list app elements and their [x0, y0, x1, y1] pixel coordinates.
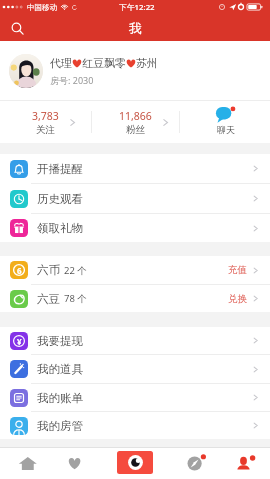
staticText: 78 个 — [64, 292, 87, 305]
staticText: 我 — [129, 20, 142, 36]
staticText: 红豆飘零 — [82, 56, 126, 70]
staticText: 6 — [17, 265, 22, 276]
staticText: 粉丝 — [126, 124, 146, 136]
button[interactable]: 历史观看 — [0, 184, 270, 213]
button[interactable]: 开播提醒 — [0, 154, 270, 183]
button[interactable]: 我的账单 — [0, 384, 270, 411]
staticText: 我的房管 — [37, 419, 83, 433]
button[interactable]: Discover — [165, 448, 220, 479]
button[interactable]: ¥ — [0, 327, 270, 354]
staticText: 22 个 — [64, 264, 87, 277]
staticText: 开播提醒 — [37, 162, 83, 176]
staticText: 关注 — [36, 124, 56, 136]
staticText: 充值 — [228, 264, 247, 276]
staticText: 兑换 — [228, 293, 247, 305]
button[interactable]: Home — [0, 448, 55, 479]
button[interactable]: Favorites — [55, 448, 105, 479]
button[interactable]: 3,783 — [0, 101, 91, 143]
button[interactable]: 领取礼物 — [0, 214, 270, 242]
button[interactable]: Me — [220, 448, 270, 479]
button[interactable] — [9, 54, 43, 88]
staticText: 领取礼物 — [37, 221, 83, 235]
button[interactable]: 六豆 — [0, 285, 270, 312]
button[interactable]: 我的房管 — [0, 412, 270, 439]
staticText: 11,866 — [119, 109, 152, 123]
staticText: 我要提现 — [37, 334, 83, 348]
staticText: 3,783 — [32, 109, 59, 123]
staticText: 代理 — [50, 56, 72, 70]
staticText: 我的道具 — [37, 362, 83, 376]
button[interactable]: 我的道具 — [0, 355, 270, 383]
staticText: 房号: 2030 — [50, 74, 94, 86]
staticText: 下午12:22 — [119, 2, 155, 13]
staticText: 历史观看 — [37, 192, 83, 206]
staticText: 六豆 — [37, 292, 60, 306]
staticText: 六币 — [37, 263, 60, 277]
staticText: ¥ — [17, 336, 22, 347]
staticText: 我的账单 — [37, 391, 83, 405]
staticText: 中国移动 — [27, 3, 57, 12]
button[interactable]: Search — [6, 17, 28, 39]
staticText: 聊天 — [217, 124, 235, 135]
staticText: 苏州 — [136, 56, 158, 70]
button[interactable]: 聊天 — [180, 101, 270, 143]
button[interactable]: 代理 — [0, 41, 270, 100]
button[interactable]: 6 — [0, 256, 270, 284]
button[interactable]: Go live — [117, 451, 153, 474]
button[interactable]: 11,866 — [92, 101, 179, 143]
